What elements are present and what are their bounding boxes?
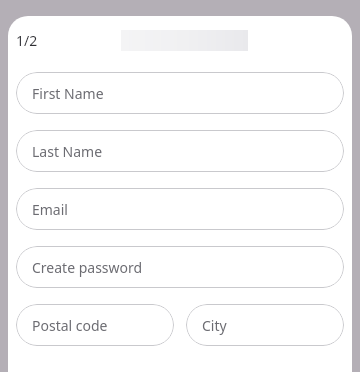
staticText: Postal code (32, 316, 108, 335)
staticText: 1/2 (16, 31, 38, 50)
staticText: Email (32, 200, 68, 219)
staticText: Create password (32, 258, 143, 277)
staticText: Last Name (32, 142, 103, 161)
button[interactable]: City (186, 304, 344, 346)
staticText: First Name (32, 84, 104, 103)
button[interactable]: First Name (16, 72, 344, 114)
button[interactable]: Email (16, 188, 344, 230)
button[interactable]: Last Name (16, 130, 344, 172)
button[interactable]: Postal code (16, 304, 174, 346)
button[interactable]: Create password (16, 246, 344, 288)
staticText: City (202, 316, 227, 335)
